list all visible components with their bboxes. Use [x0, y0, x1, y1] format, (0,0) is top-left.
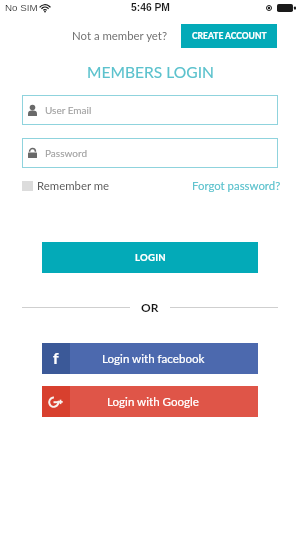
button[interactable]: f — [42, 343, 258, 374]
button[interactable]: Forgot password? — [192, 179, 281, 193]
staticText: Password — [45, 147, 87, 159]
button[interactable]: CREATE ACCOUNT — [181, 24, 277, 48]
button[interactable]: Password — [22, 138, 278, 168]
other: Wi-Fi — [40, 4, 50, 12]
staticText: Login with Google — [107, 395, 199, 409]
staticText: MEMBERS LOGIN — [87, 63, 214, 82]
staticText: f — [53, 349, 59, 368]
staticText: OR — [141, 300, 159, 314]
staticText: Forgot password? — [192, 179, 281, 193]
staticText: 5:46 PM — [131, 2, 170, 14]
staticText: No SIM — [5, 2, 38, 13]
button[interactable]: User Email — [22, 95, 278, 125]
staticText: User Email — [45, 104, 92, 116]
staticText: Not a member yet? — [72, 29, 168, 43]
button[interactable]: Remember me — [22, 179, 110, 193]
staticText: LOGIN — [135, 252, 166, 264]
staticText: Login with facebook — [102, 352, 205, 366]
button[interactable]: LOGIN — [42, 242, 258, 273]
button[interactable]: Login with Google — [42, 386, 258, 417]
staticText: CREATE ACCOUNT — [192, 31, 267, 41]
staticText: Remember me — [37, 179, 110, 193]
